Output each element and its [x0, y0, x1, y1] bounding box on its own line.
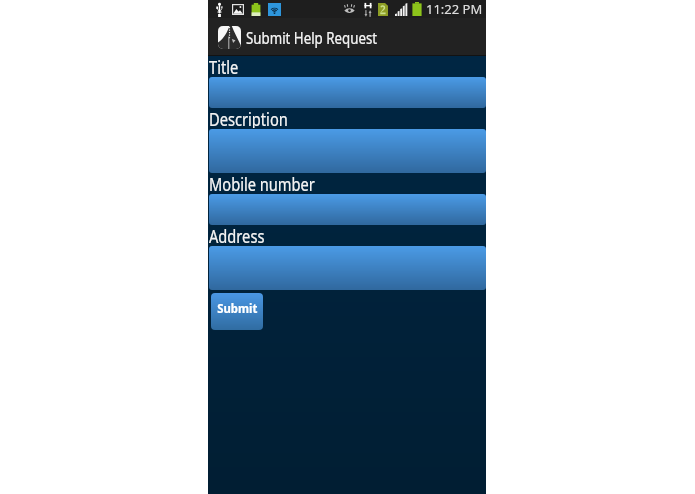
- other: App icon: [218, 26, 241, 49]
- staticText: Title: [209, 55, 238, 76]
- button[interactable]: Title: [209, 77, 486, 108]
- button[interactable]: Submit: [211, 293, 263, 330]
- staticText: Mobile number: [209, 172, 315, 193]
- button[interactable]: App icon: [208, 18, 486, 56]
- button[interactable]: Address: [209, 246, 486, 290]
- staticText: Description: [209, 107, 288, 128]
- button[interactable]: Description: [209, 129, 486, 173]
- staticText: Submit: [217, 300, 258, 317]
- staticText: 11:22 PM: [426, 0, 483, 18]
- staticText: Submit Help Request: [246, 27, 377, 49]
- button[interactable]: Mobile number: [209, 194, 486, 225]
- staticText: Address: [209, 224, 265, 245]
